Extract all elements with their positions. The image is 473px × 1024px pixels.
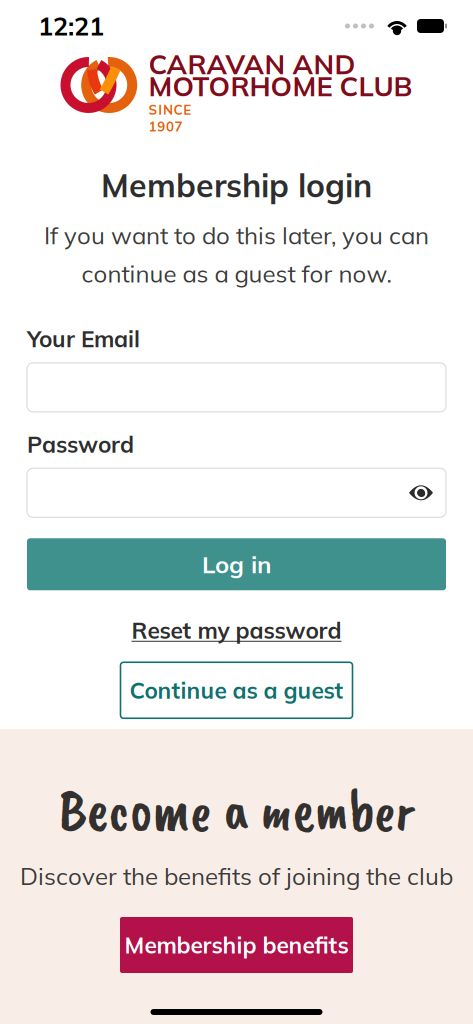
staticText: Become a member [58,773,414,847]
button[interactable]: Show password [396,468,446,517]
button[interactable]: Reset my password [27,616,446,644]
staticText: Membership login [101,165,372,205]
staticText: If you want to do this later, you can [44,220,429,250]
button[interactable]: Continue as a guest [120,662,352,718]
staticText: Membership benefits [124,931,348,959]
staticText: Discover the benefits of joining the clu… [20,861,453,891]
staticText: Reset my password [131,616,341,644]
staticText: MOTORHOME CLUB [148,69,412,103]
staticText: CARAVAN AND [148,47,355,81]
staticText: 12:21 [38,10,104,42]
staticText: SINCE 1907 [148,101,231,118]
staticText: Password [27,430,134,458]
staticText: continue as a guest for now. [81,258,391,288]
button[interactable]: Membership benefits [120,917,353,973]
staticText: Your Email [27,324,140,353]
button[interactable]: Log in [27,538,446,590]
staticText: Continue as a guest [129,676,343,704]
staticText: Log in [202,549,271,579]
